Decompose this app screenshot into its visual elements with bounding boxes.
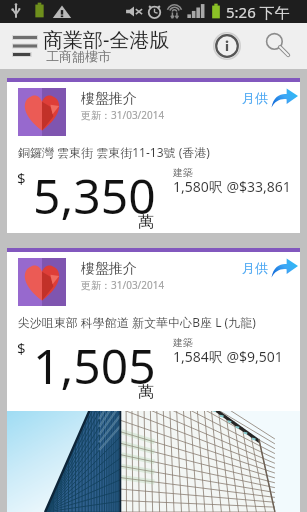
- staticText: 尖沙咀東部 科學館道 新文華中心B座 L (九龍): [18, 314, 256, 330]
- staticText: 月供: [242, 90, 268, 106]
- staticText: 1,580呎 @$33,861: [173, 177, 291, 196]
- button[interactable]: Info: [207, 23, 247, 69]
- button[interactable]: Menu: [4, 23, 42, 69]
- staticText: 更新：31/03/2014: [81, 278, 165, 292]
- staticText: 更新：31/03/2014: [81, 108, 165, 122]
- staticText: $: [17, 338, 26, 358]
- staticText: 5:26 下午: [226, 2, 290, 22]
- staticText: 1,584呎 @$9,501: [173, 347, 283, 366]
- staticText: 5,350: [33, 163, 156, 228]
- button[interactable]: Search: [257, 23, 297, 69]
- staticText: 建築: [173, 336, 193, 349]
- staticText: 商業部-全港版: [43, 26, 170, 53]
- button[interactable]: 樓盤推介: [7, 248, 300, 512]
- staticText: 銅鑼灣 雲東街 雲東街11-13號 (香港): [18, 144, 210, 160]
- staticText: 月供: [242, 260, 268, 276]
- button[interactable]: 月供: [242, 258, 298, 278]
- staticText: 建築: [173, 166, 193, 179]
- staticText: 樓盤推介: [81, 260, 137, 278]
- staticText: 萬: [138, 212, 154, 232]
- staticText: 工商舖樓市: [46, 48, 111, 64]
- staticText: $: [17, 168, 26, 188]
- staticText: 1,505: [33, 333, 156, 398]
- button[interactable]: 月供: [242, 88, 298, 108]
- staticText: 萬: [138, 382, 154, 402]
- staticText: 樓盤推介: [81, 90, 137, 108]
- button[interactable]: 樓盤推介: [7, 78, 300, 233]
